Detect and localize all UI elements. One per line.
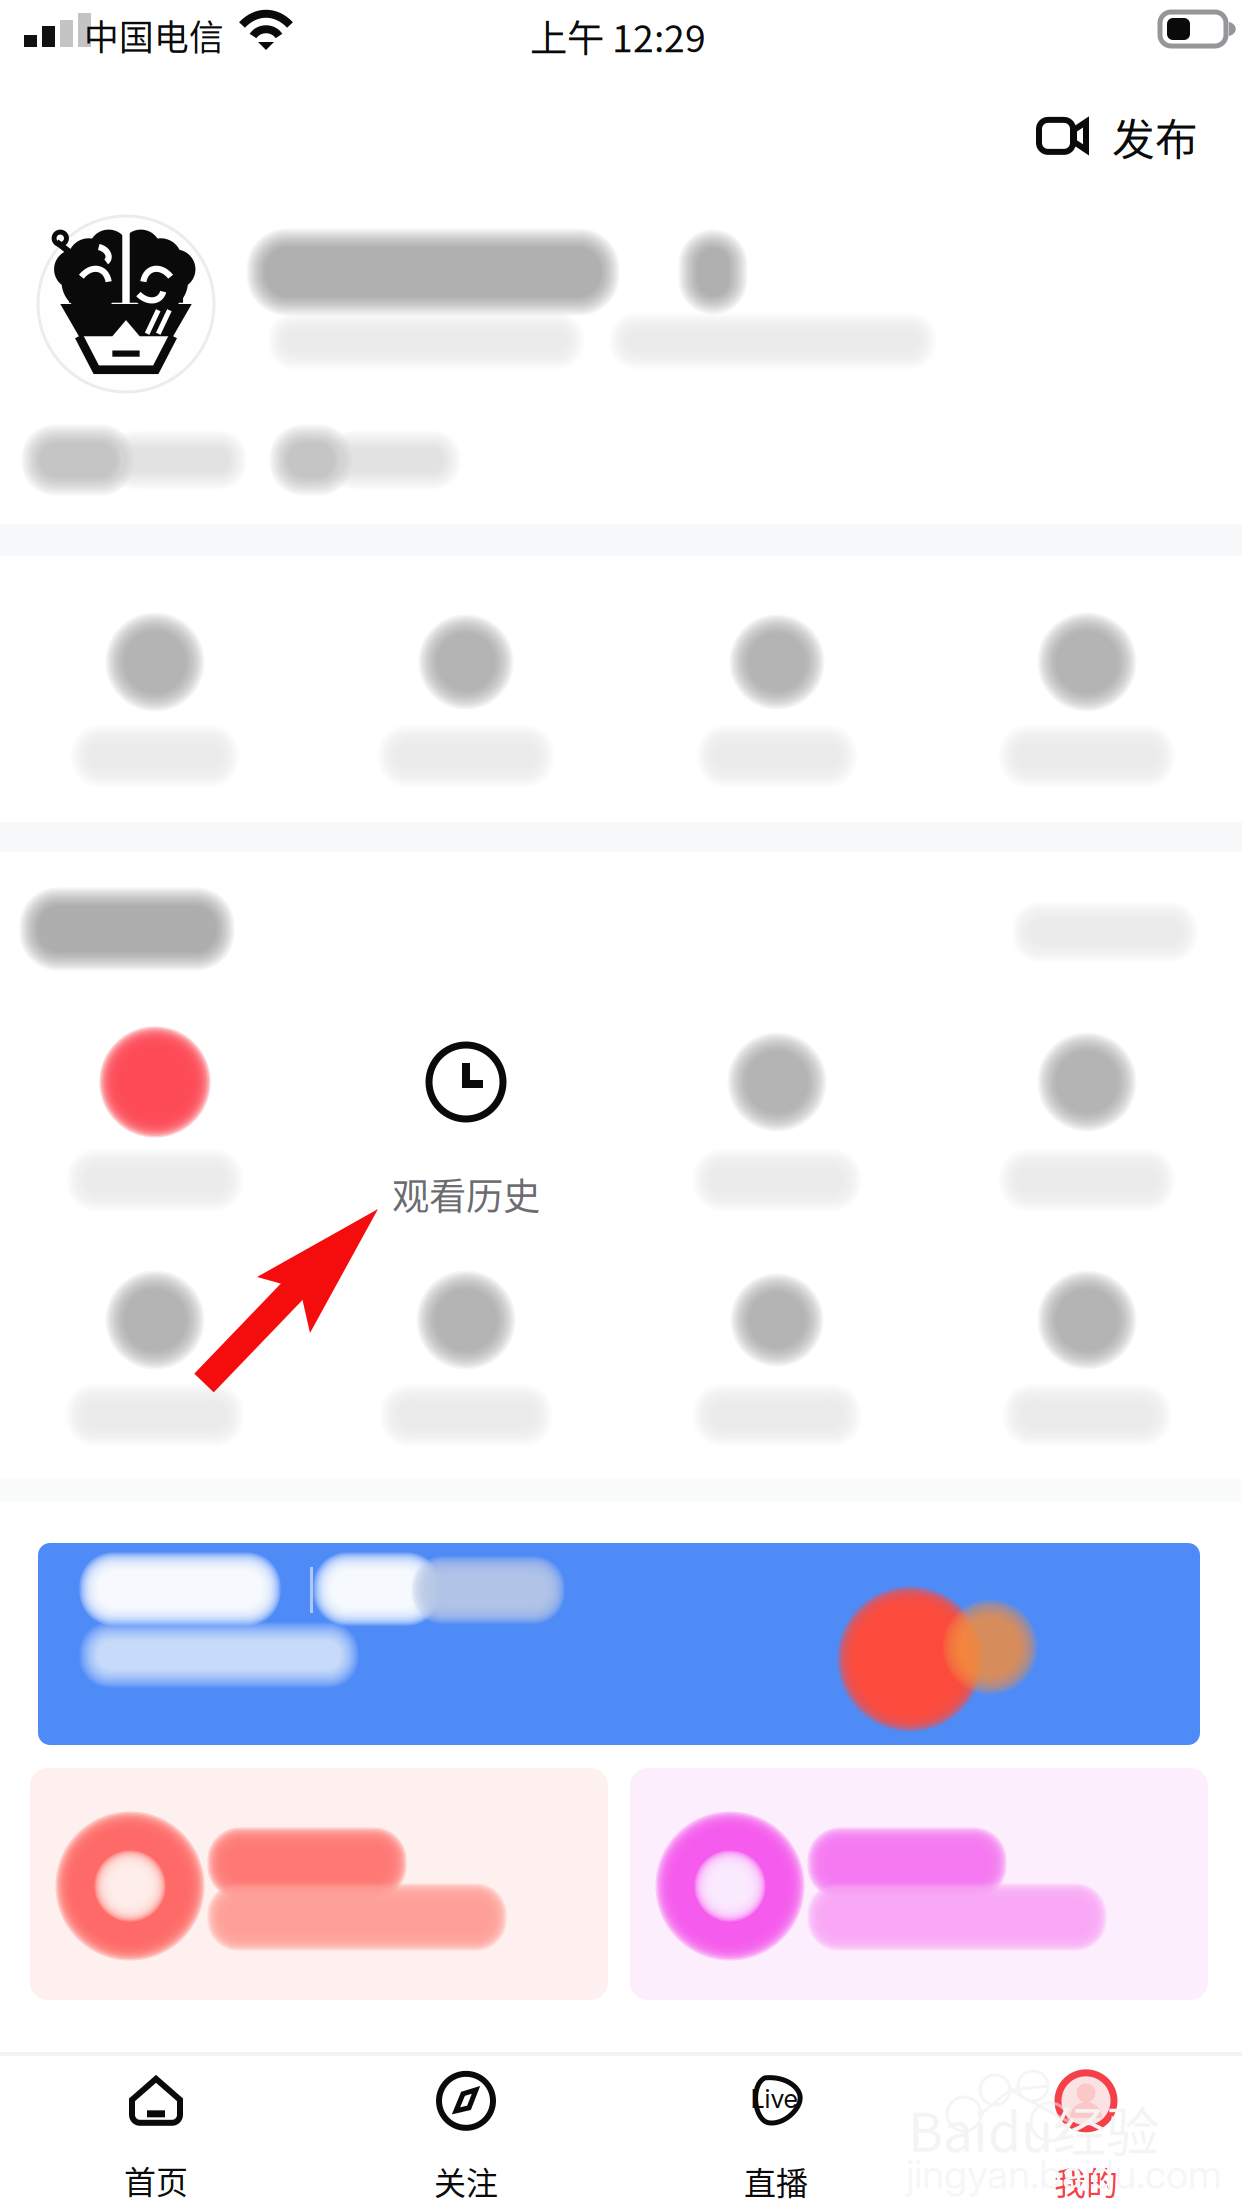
staticText: Baidu经验 [908, 2090, 1159, 2167]
button[interactable] [957, 602, 1217, 796]
button[interactable] [245, 227, 765, 337]
staticText: 观看历史 [392, 1167, 540, 1221]
button[interactable]: 关注 [311, 2056, 621, 2208]
staticText: 直播 [744, 2158, 808, 2204]
button[interactable]: 发布 [1020, 92, 1214, 182]
staticText: 我的 [1054, 2158, 1118, 2204]
button[interactable] [647, 1260, 907, 1455]
staticText: 关注 [434, 2158, 498, 2204]
staticText: jingyan.baidu.com [906, 2150, 1222, 2198]
staticText: 发布 [1112, 106, 1198, 168]
button[interactable] [30, 1768, 608, 2000]
button[interactable] [336, 602, 596, 796]
staticText: 中国电信 [84, 10, 224, 60]
button[interactable] [20, 423, 250, 517]
button[interactable] [647, 602, 907, 796]
staticText: 首页 [124, 2157, 188, 2203]
button[interactable]: 观看历史 [336, 1040, 596, 1240]
button[interactable] [957, 1260, 1217, 1455]
button[interactable] [25, 1260, 285, 1455]
button[interactable] [25, 1022, 285, 1220]
button[interactable] [336, 1260, 596, 1455]
button[interactable] [630, 1768, 1208, 2000]
button[interactable]: 用户头像 [38, 216, 214, 392]
staticText: Live [750, 2083, 797, 2114]
button[interactable] [38, 1543, 1200, 1745]
button[interactable]: 我的 [931, 2056, 1241, 2208]
button[interactable] [25, 602, 285, 796]
button[interactable] [1010, 900, 1200, 964]
button[interactable]: Live [621, 2056, 931, 2208]
button[interactable] [647, 1022, 907, 1220]
button[interactable] [957, 1022, 1217, 1220]
button[interactable]: 首页 [1, 2056, 311, 2208]
button[interactable] [268, 423, 468, 517]
staticText: 上午 12:29 [530, 9, 706, 63]
